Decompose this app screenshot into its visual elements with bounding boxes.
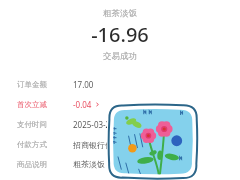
staticText: 2025-03-21 12:07:51 [73, 119, 149, 130]
staticText: 订单金额 [17, 80, 47, 89]
staticText: 付款方式 [17, 140, 47, 149]
staticText: 粗茶淡饭 [0, 8, 240, 19]
button[interactable]: 付款方式 [0, 134, 240, 154]
button[interactable]: 订单金额 [0, 74, 240, 94]
staticText: 交易成功 [0, 51, 240, 62]
staticText: -16.96 [0, 21, 240, 48]
staticText: 商品说明 [17, 160, 47, 169]
staticText: 支付时间 [17, 120, 47, 129]
staticText: 招商银行储蓄卡(1234) [73, 139, 153, 150]
button[interactable]: 商品说明 [0, 154, 240, 174]
staticText: -0.04 [73, 99, 92, 110]
button[interactable]: 首次立减 [0, 94, 240, 114]
button[interactable]: 支付时间 [0, 114, 240, 134]
staticText: 首次立减 [17, 100, 47, 109]
staticText: 粗茶淡饭 [73, 159, 105, 169]
staticText: 17.00 [73, 79, 94, 90]
